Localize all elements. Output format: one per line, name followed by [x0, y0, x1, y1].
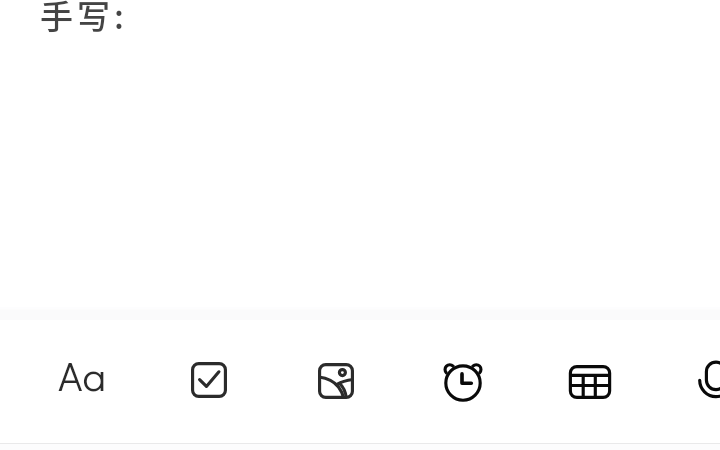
button[interactable]: Voice input	[686, 350, 720, 410]
button[interactable]: Text style	[51, 349, 111, 409]
staticText: 手写:	[40, 0, 128, 39]
button[interactable]: Insert table	[560, 352, 620, 412]
button[interactable]: Checklist	[179, 350, 239, 410]
staticText: Aa	[58, 347, 107, 402]
button[interactable]: Insert image	[306, 351, 366, 411]
button[interactable]: Reminder	[433, 353, 493, 413]
